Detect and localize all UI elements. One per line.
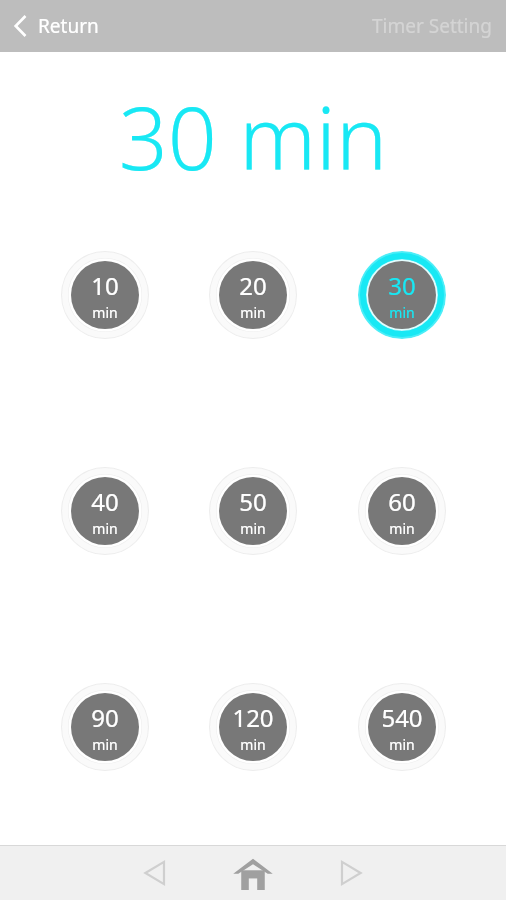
staticText: min bbox=[92, 519, 118, 538]
button[interactable]: 90 bbox=[61, 683, 149, 771]
button[interactable]: 50 bbox=[209, 467, 297, 555]
staticText: min bbox=[389, 735, 415, 754]
button[interactable]: 60 bbox=[358, 467, 446, 555]
staticText: 10 bbox=[91, 269, 119, 302]
staticText: 40 bbox=[91, 485, 119, 518]
staticText: min bbox=[92, 735, 118, 754]
staticText: 30 min bbox=[0, 78, 506, 195]
staticText: 120 bbox=[232, 701, 274, 734]
button[interactable]: 20 bbox=[209, 251, 297, 339]
button[interactable]: Return bbox=[0, 0, 115, 52]
staticText: Timer Setting bbox=[372, 13, 492, 39]
button[interactable]: 540 bbox=[358, 683, 446, 771]
button[interactable]: Home bbox=[216, 846, 290, 900]
staticText: 60 bbox=[388, 485, 416, 518]
staticText: min bbox=[389, 303, 415, 322]
button[interactable]: Recent apps bbox=[314, 846, 388, 900]
staticText: min bbox=[240, 519, 266, 538]
staticText: 30 bbox=[388, 269, 416, 302]
staticText: min bbox=[240, 735, 266, 754]
staticText: min bbox=[240, 303, 266, 322]
staticText: Return bbox=[38, 13, 99, 39]
staticText: 540 bbox=[381, 701, 423, 734]
button[interactable]: 30 bbox=[358, 251, 446, 339]
staticText: min bbox=[389, 519, 415, 538]
staticText: 90 bbox=[91, 701, 119, 734]
staticText: 20 bbox=[239, 269, 267, 302]
staticText: 50 bbox=[239, 485, 267, 518]
staticText: min bbox=[92, 303, 118, 322]
button[interactable]: 40 bbox=[61, 467, 149, 555]
button[interactable]: 10 bbox=[61, 251, 149, 339]
button[interactable]: Back bbox=[118, 846, 192, 900]
button[interactable]: 120 bbox=[209, 683, 297, 771]
